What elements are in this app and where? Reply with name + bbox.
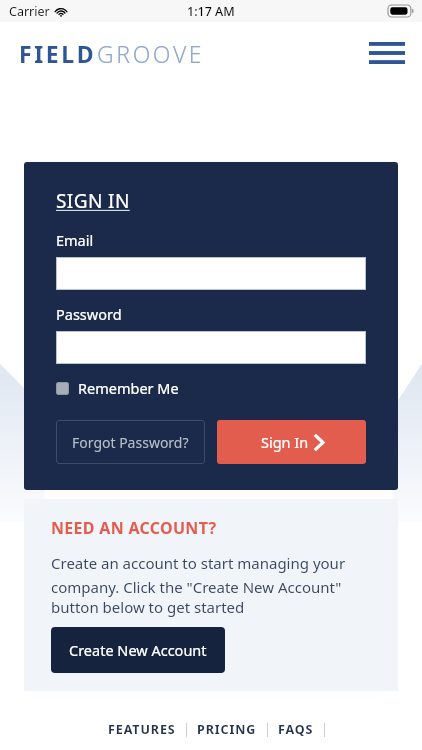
staticText: 1:17 AM	[187, 3, 235, 20]
staticText: FAQS	[278, 721, 314, 738]
staticText: FEATURES	[108, 721, 176, 738]
staticText: Password	[56, 304, 122, 324]
button[interactable]: PRICING	[187, 717, 267, 742]
button[interactable]: FEATURES	[98, 717, 186, 742]
staticText: Forgot Password?	[72, 433, 189, 452]
staticText: PRICING	[197, 721, 257, 738]
button[interactable]: SIGN IN	[56, 188, 130, 214]
staticText: Carrier	[9, 3, 50, 20]
staticText: Create New Account	[69, 640, 207, 660]
button[interactable]	[56, 331, 366, 364]
button[interactable]: FAQS	[268, 717, 324, 742]
button[interactable]: FIELD	[19, 38, 205, 69]
staticText: Remember Me	[78, 378, 179, 398]
button[interactable]: Create New Account	[51, 627, 225, 673]
button[interactable]	[56, 257, 366, 290]
staticText: Email	[56, 230, 94, 250]
staticText: Create an account to start managing your…	[51, 553, 378, 597]
button[interactable]: Sign In	[217, 420, 366, 464]
staticText: FIELD	[19, 38, 97, 69]
staticText: GROOVE	[97, 38, 205, 69]
button[interactable]: Open menu	[368, 38, 406, 68]
staticText: button below to get started	[51, 597, 245, 617]
staticText: Sign In	[261, 432, 309, 452]
staticText: NEED AN ACCOUNT?	[51, 517, 217, 539]
button[interactable]: Remember Me	[56, 378, 179, 398]
button[interactable]: Forgot Password?	[56, 420, 205, 464]
